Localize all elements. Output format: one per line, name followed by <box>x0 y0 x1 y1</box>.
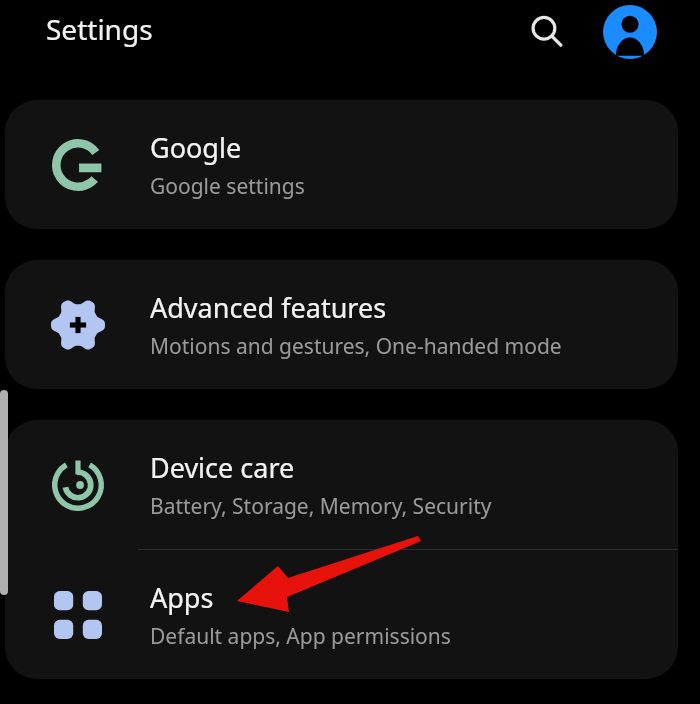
staticText: Apps <box>150 579 214 616</box>
staticText: Google <box>150 129 242 166</box>
button[interactable]: Apps <box>5 550 678 679</box>
button[interactable]: Account <box>598 0 662 64</box>
staticText: Motions and gestures, One-handed mode <box>150 332 562 361</box>
staticText: Device care <box>150 449 295 486</box>
button[interactable]: Google <box>5 100 678 229</box>
staticText: Advanced features <box>150 289 387 326</box>
button[interactable]: Search <box>518 3 574 59</box>
staticText: Default apps, App permissions <box>150 622 451 651</box>
staticText: Settings <box>46 10 153 48</box>
staticText: Google settings <box>150 172 305 201</box>
staticText: Battery, Storage, Memory, Security <box>150 492 492 521</box>
button[interactable]: Device care <box>5 420 678 549</box>
button[interactable]: Advanced features <box>5 260 678 389</box>
